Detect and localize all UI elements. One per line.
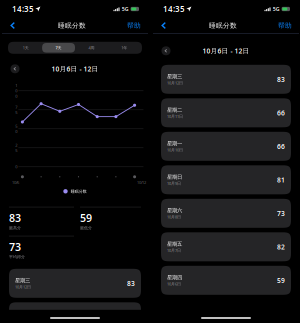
staticText: 1天 xyxy=(23,45,29,50)
button[interactable]: 帮助 xyxy=(121,18,148,33)
staticText: 星期四 xyxy=(167,274,182,281)
button[interactable]: 1天 xyxy=(9,43,42,53)
staticText: 14:35 xyxy=(163,4,185,14)
button[interactable]: Previous period xyxy=(9,63,21,75)
staticText: 66 xyxy=(277,108,285,117)
staticText: 睡眠分数 xyxy=(71,189,87,194)
button[interactable]: 星期三 xyxy=(161,65,291,94)
staticText: 星期五 xyxy=(167,241,182,247)
staticText: 4周 xyxy=(88,45,94,50)
button[interactable]: 星期二 xyxy=(9,302,141,323)
button[interactable]: Back xyxy=(153,18,174,33)
staticText: 10月8日 xyxy=(167,214,181,219)
button[interactable]: 帮助 xyxy=(272,18,299,33)
staticText: 10/12 xyxy=(137,180,146,185)
staticText: 75 xyxy=(15,104,17,115)
staticText: 14:35 xyxy=(12,4,34,14)
staticText: 66 xyxy=(277,142,285,151)
staticText: 星期一 xyxy=(167,140,182,147)
staticText: 10月7日 xyxy=(167,248,181,253)
staticText: 10月9日 xyxy=(167,181,181,186)
staticText: 50 xyxy=(15,123,17,134)
staticText: 星期三 xyxy=(167,73,182,80)
staticText: 83 xyxy=(127,279,135,288)
staticText: 星期二 xyxy=(167,107,182,113)
staticText: 10月6日 xyxy=(167,281,181,286)
staticText: 59 xyxy=(80,211,92,225)
staticText: 帮助 xyxy=(278,21,292,30)
staticText: 73 xyxy=(277,209,285,218)
staticText: 73 xyxy=(9,240,21,254)
staticText: 25 xyxy=(15,142,17,153)
staticText: 10月12日 xyxy=(15,284,31,289)
button[interactable]: 星期六 xyxy=(161,199,291,228)
button[interactable]: 星期三 xyxy=(9,269,141,298)
staticText: 59 xyxy=(277,276,285,285)
staticText: 5G xyxy=(122,5,129,13)
staticText: 1年 xyxy=(121,45,127,50)
staticText: 7天 xyxy=(55,45,61,50)
button[interactable]: 4周 xyxy=(75,43,108,53)
button[interactable]: 星期四 xyxy=(161,266,291,295)
staticText: 睡眠分数 xyxy=(209,21,237,30)
staticText: 81 xyxy=(277,175,285,184)
staticText: 10月10日 xyxy=(167,147,183,152)
staticText: 10月6日 - 12日 xyxy=(51,64,98,73)
button[interactable]: 星期日 xyxy=(161,165,291,194)
staticText: 10月11日 xyxy=(167,114,183,119)
button[interactable]: 星期五 xyxy=(161,232,291,261)
staticText: 10月12日 xyxy=(167,80,183,85)
staticText: 最高分 xyxy=(9,225,21,230)
button[interactable]: 星期二 xyxy=(161,98,291,127)
staticText: 100 xyxy=(15,83,17,99)
staticText: 帮助 xyxy=(127,21,141,30)
staticText: 10/6 xyxy=(12,180,19,185)
button[interactable]: Previous period xyxy=(160,45,172,57)
staticText: 82 xyxy=(277,242,285,251)
button[interactable]: 7天 xyxy=(42,43,75,53)
button[interactable]: Back xyxy=(2,18,23,33)
staticText: 最低分 xyxy=(80,225,92,230)
staticText: 83 xyxy=(9,211,21,225)
staticText: 平均得分 xyxy=(9,254,25,259)
button[interactable]: 星期一 xyxy=(161,132,291,161)
staticText: 星期日 xyxy=(167,174,182,180)
staticText: 5G xyxy=(273,5,280,13)
staticText: 0 xyxy=(15,164,17,169)
staticText: 星期三 xyxy=(15,277,30,284)
staticText: 睡眠分数 xyxy=(58,21,86,30)
staticText: 83 xyxy=(277,75,285,84)
staticText: 星期六 xyxy=(167,207,182,214)
button[interactable]: 1年 xyxy=(108,43,141,53)
staticText: 10月6日 - 12日 xyxy=(202,46,249,55)
